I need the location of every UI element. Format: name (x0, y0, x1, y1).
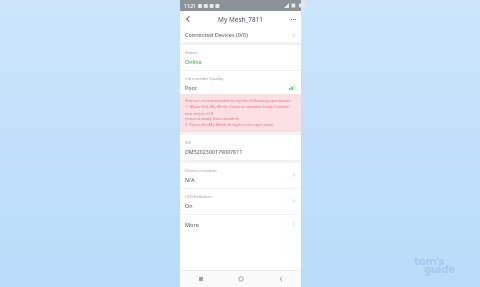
staticText: 1. Move this My Mesh closer to another k… (185, 104, 296, 116)
staticText: N/A (185, 176, 195, 183)
staticText: guide (424, 261, 455, 276)
staticText: Connected Devices (0/0) (185, 31, 248, 38)
button[interactable]: Device Location (180, 163, 301, 188)
staticText: More (185, 221, 199, 228)
staticText: tom's (414, 253, 445, 268)
staticText: SN (185, 139, 191, 145)
staticText: Device Location (185, 167, 217, 173)
staticText: 11:21 (184, 3, 196, 9)
staticText: DM5202300179007811 (185, 148, 243, 155)
staticText: Connection Quality (185, 75, 224, 81)
button[interactable]: Home (221, 271, 261, 287)
button[interactable]: Connected Devices (0/0) (180, 27, 301, 42)
staticText: You are recommended to try the following… (185, 98, 292, 104)
staticText: My Mesh_7811 (196, 15, 285, 24)
button[interactable]: More options (285, 11, 301, 27)
staticText: meters) away from another. (185, 116, 240, 122)
button[interactable]: Back (261, 271, 301, 287)
staticText: LED Indicator (185, 193, 213, 199)
staticText: 2. Place the My Mesh at high in an open … (185, 122, 275, 128)
button[interactable]: LED Indicator (180, 189, 301, 214)
staticText: Online (185, 58, 202, 65)
staticText: On (185, 202, 193, 209)
button[interactable]: Back (180, 11, 196, 27)
button[interactable]: More (180, 215, 301, 233)
button[interactable]: Recent apps (180, 271, 221, 287)
staticText: Poor (185, 84, 197, 91)
staticText: Status (185, 49, 198, 55)
